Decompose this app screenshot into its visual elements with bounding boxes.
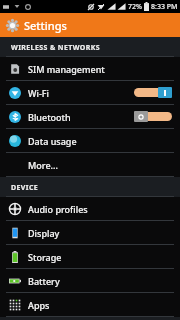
staticText: Wi-Fi (28, 87, 49, 99)
staticText: Storage (28, 251, 62, 263)
button[interactable]: Apps (0, 293, 180, 317)
staticText: Settings (24, 18, 67, 33)
other: Settings (6, 19, 19, 32)
button[interactable]: Data usage (0, 129, 180, 153)
staticText: 72% (128, 2, 142, 12)
staticText: More... (28, 159, 58, 171)
staticText: Display (28, 227, 60, 239)
staticText: Audio profiles (28, 203, 88, 215)
button[interactable]: Display (0, 221, 180, 245)
staticText: Bluetooth (28, 111, 71, 123)
button[interactable]: Storage (0, 245, 180, 269)
staticText: Data usage (28, 135, 77, 147)
staticText: Apps (28, 299, 50, 311)
staticText: DEVICE (11, 183, 39, 193)
staticText: SIM management (28, 63, 105, 75)
button[interactable]: Wi-Fi (0, 81, 180, 105)
staticText: 8:33 PM (151, 2, 178, 12)
button[interactable]: More... (0, 153, 180, 177)
button[interactable] (134, 87, 172, 98)
button[interactable]: Audio profiles (0, 197, 180, 221)
button[interactable]: SIM management (0, 57, 180, 81)
button[interactable]: Settings (0, 13, 180, 37)
button[interactable]: Battery (0, 269, 180, 293)
button[interactable] (134, 111, 172, 122)
button[interactable]: Bluetooth (0, 105, 180, 129)
staticText: Battery (28, 275, 60, 287)
staticText: WIRELESS & NETWORKS (11, 43, 101, 53)
